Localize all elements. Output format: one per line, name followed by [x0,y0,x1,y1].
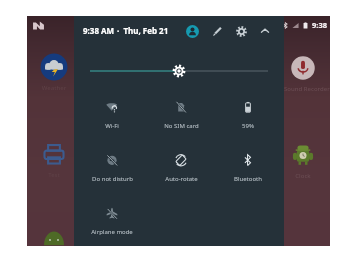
staticText: 59% [242,122,254,130]
staticText: Wi-Fi [105,122,119,130]
staticText: · Thu, Feb 21 [117,25,169,36]
button[interactable]: Bluetooth [214,144,282,184]
button[interactable]: Settings [232,22,250,40]
staticText: No SIM card [164,122,199,130]
staticText: Airplane mode [91,228,133,236]
staticText: Sound Recorder [284,85,330,93]
staticText: Auto-rotate [165,175,198,183]
button[interactable]: Droid [44,230,64,246]
button[interactable]: Brightness [90,61,268,81]
button[interactable]: Clock [289,141,317,169]
button[interactable]: Edit [208,22,226,40]
button[interactable]: Sound Recorder [289,54,317,82]
button[interactable]: 59% [214,91,282,131]
button[interactable]: Auto-rotate [147,144,215,184]
button[interactable]: Collapse [256,22,274,40]
button[interactable]: Do not disturb [78,144,146,184]
button[interactable]: No SIM card [147,91,215,131]
button[interactable]: Test [40,140,68,168]
button[interactable]: Weather [40,53,68,81]
staticText: Do not disturb [92,175,133,183]
button[interactable]: Airplane mode [78,197,146,237]
staticText: 9:38 AM [83,25,115,36]
staticText: Weather [28,84,80,92]
button[interactable]: Wi-Fi [78,91,146,131]
button[interactable]: User [183,22,201,40]
staticText: 9:38 [312,20,327,30]
staticText: Clock [280,172,326,180]
staticText: Bluetooth [234,175,262,183]
staticText: Test [28,171,80,179]
